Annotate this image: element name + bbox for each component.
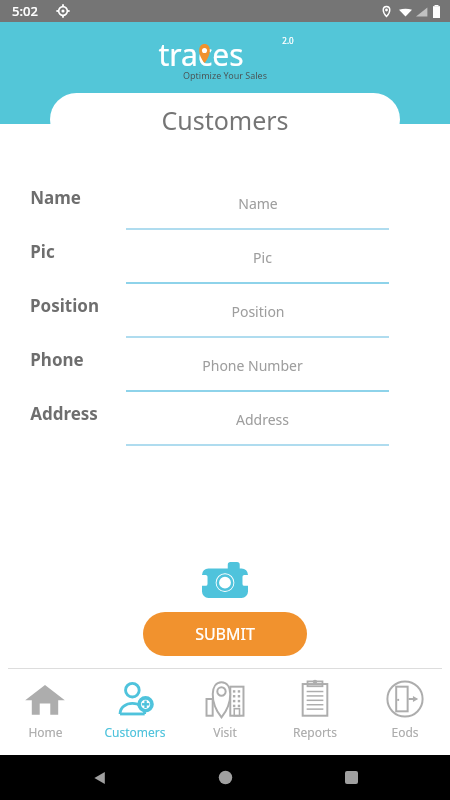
button[interactable]: Name xyxy=(126,188,389,230)
staticText: Position xyxy=(30,294,99,317)
staticText: Visit xyxy=(213,724,237,740)
button[interactable]: SUBMIT xyxy=(143,612,307,656)
staticText: Home xyxy=(28,724,63,740)
button[interactable]: Customers xyxy=(90,669,180,740)
staticText: Pic xyxy=(253,248,272,267)
staticText: 2.0 xyxy=(282,35,294,46)
staticText: Customers xyxy=(161,103,289,137)
staticText: Pic xyxy=(30,240,55,263)
staticText: 5:02 xyxy=(12,2,38,20)
staticText: Eods xyxy=(391,724,419,740)
staticText: Name xyxy=(30,186,81,209)
button[interactable]: Eods xyxy=(360,669,450,740)
staticText: Position xyxy=(231,302,285,321)
staticText: traces xyxy=(158,34,244,68)
staticText: Optimize Your Sales xyxy=(183,69,267,81)
staticText: Phone Number xyxy=(202,356,303,375)
button[interactable]: Reports xyxy=(270,669,360,740)
staticText: Customers xyxy=(104,724,166,740)
button[interactable]: Customers xyxy=(50,93,400,146)
staticText: Phone xyxy=(30,348,84,371)
staticText: Name xyxy=(238,194,278,213)
button[interactable]: Pic xyxy=(126,242,389,284)
staticText: Reports xyxy=(293,724,337,740)
button[interactable]: Position xyxy=(126,296,389,338)
button[interactable]: Home xyxy=(0,669,90,740)
button[interactable]: Address xyxy=(126,404,389,446)
button[interactable]: Visit xyxy=(180,669,270,740)
staticText: SUBMIT xyxy=(195,623,255,645)
button[interactable]: Phone Number xyxy=(126,350,389,392)
staticText: Address xyxy=(236,410,289,429)
button[interactable]: Take photo xyxy=(199,560,251,600)
staticText: Address xyxy=(30,402,98,425)
